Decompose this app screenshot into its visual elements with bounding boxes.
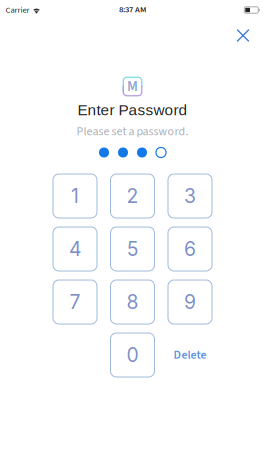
staticText: 3	[184, 184, 196, 208]
button[interactable]: 2	[110, 174, 154, 218]
button[interactable]: 0	[110, 333, 154, 377]
button[interactable]: 4	[53, 227, 97, 271]
button[interactable]: Close	[226, 20, 260, 50]
staticText: 2	[126, 184, 138, 208]
staticText: 4	[69, 237, 81, 261]
staticText: M	[127, 76, 138, 97]
staticText: 5	[127, 237, 138, 261]
staticText: 0	[126, 343, 138, 367]
staticText: Delete	[173, 346, 206, 364]
button[interactable]: 7	[53, 280, 97, 324]
staticText: 8	[126, 290, 138, 314]
button[interactable]: 1	[53, 174, 97, 218]
button[interactable]: 6	[168, 227, 212, 271]
staticText: Enter Password	[77, 101, 187, 118]
button[interactable]: 3	[168, 174, 212, 218]
staticText: 6	[184, 237, 196, 261]
staticText: 9	[184, 290, 196, 314]
staticText: 8:37 AM	[119, 3, 146, 16]
button[interactable]: Delete	[165, 333, 215, 377]
staticText: Carrier	[5, 4, 29, 16]
button[interactable]: 8	[110, 280, 154, 324]
staticText: Please set a password.	[76, 123, 188, 140]
staticText: 1	[71, 184, 79, 208]
button[interactable]: 9	[168, 280, 212, 324]
button[interactable]: 5	[110, 227, 154, 271]
staticText: 7	[69, 290, 80, 314]
